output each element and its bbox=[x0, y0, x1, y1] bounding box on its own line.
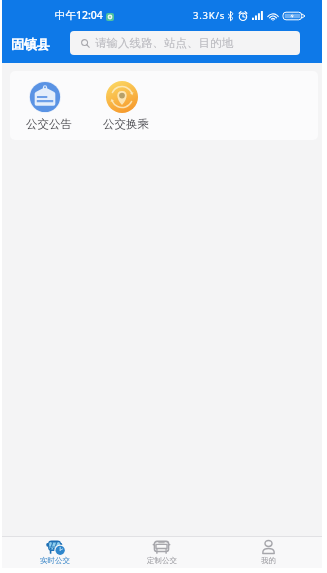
staticText: 3.3K/s bbox=[193, 9, 226, 22]
staticText: 公交公告 bbox=[26, 117, 72, 131]
button[interactable]: 请输入线路、站点、目的地 bbox=[70, 31, 300, 55]
staticText: 定制公交 bbox=[147, 556, 177, 565]
staticText: 公交换乘 bbox=[103, 117, 149, 131]
staticText: 实时公交 bbox=[40, 556, 70, 565]
staticText: 中午12:04 bbox=[55, 8, 103, 22]
button[interactable]: 实时公交 bbox=[2, 537, 108, 568]
button[interactable]: 固镇县 bbox=[11, 36, 50, 52]
button[interactable]: 定制公交 bbox=[108, 537, 215, 568]
button[interactable]: 公交公告 bbox=[10, 71, 87, 140]
button[interactable]: 我的 bbox=[215, 537, 322, 568]
staticText: 请输入线路、站点、目的地 bbox=[95, 36, 233, 50]
button[interactable]: 公交换乘 bbox=[87, 71, 164, 140]
staticText: 我的 bbox=[261, 556, 276, 565]
